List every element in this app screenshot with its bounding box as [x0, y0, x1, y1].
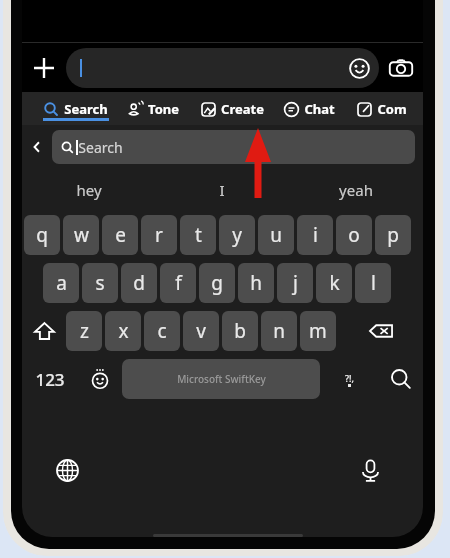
button[interactable]: n — [261, 311, 297, 351]
button[interactable]: y — [219, 215, 255, 255]
button[interactable]: Emoji — [66, 48, 379, 88]
staticText: b — [234, 318, 246, 344]
button[interactable]: o — [336, 215, 372, 255]
staticText: Chat — [304, 100, 335, 118]
staticText: x — [118, 318, 129, 344]
button[interactable]: u — [258, 215, 294, 255]
staticText: ?!, — [345, 372, 354, 384]
button[interactable]: b — [222, 311, 258, 351]
button[interactable]: hey — [22, 169, 155, 211]
staticText: e — [115, 222, 126, 248]
staticText: u — [270, 222, 282, 248]
staticText: s — [95, 270, 105, 296]
staticText: yeah — [339, 180, 373, 200]
button[interactable]: I — [155, 169, 289, 211]
staticText: r — [155, 222, 163, 248]
button[interactable]: v — [183, 311, 219, 351]
button[interactable]: x — [105, 311, 141, 351]
staticText: hey — [76, 180, 102, 200]
button[interactable]: m — [300, 311, 336, 351]
staticText: Create — [221, 100, 264, 118]
button[interactable]: g — [199, 263, 235, 303]
button[interactable]: Back — [22, 125, 52, 169]
button[interactable]: Search — [52, 130, 415, 164]
staticText: y — [232, 222, 242, 248]
staticText: Tone — [148, 100, 179, 118]
button[interactable]: j — [277, 263, 313, 303]
button[interactable]: Com — [344, 92, 420, 125]
staticText: d — [133, 270, 145, 296]
button[interactable]: Emoji — [343, 52, 375, 84]
button[interactable]: e — [102, 215, 138, 255]
staticText: n — [273, 318, 285, 344]
staticText: j — [293, 270, 298, 296]
staticText: v — [196, 318, 206, 344]
button[interactable]: Add attachment — [22, 43, 66, 92]
staticText: Search — [64, 100, 108, 118]
button[interactable]: f — [160, 263, 196, 303]
button[interactable]: Emoji keyboard — [78, 357, 122, 401]
staticText: a — [56, 270, 67, 296]
staticText: m — [309, 318, 327, 344]
button[interactable]: i — [297, 215, 333, 255]
button[interactable]: Chat — [274, 92, 344, 125]
button[interactable]: s — [82, 263, 118, 303]
button[interactable]: a — [43, 263, 79, 303]
staticText: 123 — [35, 368, 65, 391]
staticText: h — [250, 270, 262, 296]
button[interactable]: w — [63, 215, 99, 255]
button[interactable]: h — [238, 263, 274, 303]
staticText: z — [80, 318, 89, 344]
staticText: Com — [377, 100, 407, 118]
staticText: g — [211, 270, 223, 296]
staticText: l — [371, 270, 376, 296]
button[interactable]: Change language — [50, 453, 84, 487]
staticText: w — [74, 222, 89, 248]
button[interactable]: yeah — [289, 169, 423, 211]
button[interactable]: Microsoft SwiftKey — [122, 359, 320, 399]
staticText: Search — [78, 138, 123, 157]
button[interactable]: 123 — [22, 357, 78, 401]
staticText: k — [329, 270, 340, 296]
button[interactable]: k — [316, 263, 352, 303]
button[interactable]: p — [375, 215, 411, 255]
button[interactable]: Search — [379, 357, 423, 401]
button[interactable]: Camera — [379, 43, 423, 92]
button[interactable]: Search — [36, 92, 116, 125]
button[interactable]: Create — [190, 92, 274, 125]
staticText: t — [195, 222, 202, 248]
button[interactable]: c — [144, 311, 180, 351]
button[interactable]: t — [180, 215, 216, 255]
staticText: I — [219, 180, 225, 200]
staticText: c — [157, 318, 167, 344]
staticText: q — [36, 222, 48, 248]
button[interactable]: z — [66, 311, 102, 351]
staticText: o — [348, 222, 360, 248]
button[interactable]: ?!, — [320, 357, 379, 401]
staticText: Microsoft SwiftKey — [177, 372, 266, 386]
button[interactable]: Shift — [22, 309, 66, 353]
button[interactable]: d — [121, 263, 157, 303]
button[interactable]: l — [355, 263, 391, 303]
staticText: p — [387, 222, 399, 248]
staticText: f — [175, 270, 182, 296]
button[interactable]: q — [24, 215, 60, 255]
button[interactable]: Voice input — [353, 453, 387, 487]
button[interactable]: Tone — [116, 92, 190, 125]
button[interactable]: Backspace — [339, 309, 423, 353]
button[interactable]: r — [141, 215, 177, 255]
staticText: i — [313, 222, 318, 248]
